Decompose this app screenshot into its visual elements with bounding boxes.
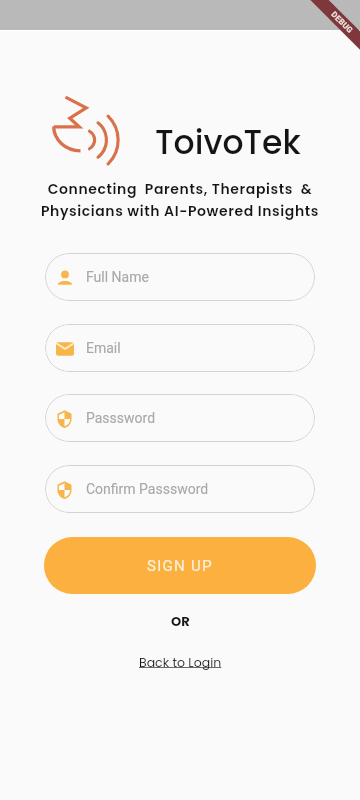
button[interactable]: Confirm Passsword — [45, 465, 315, 513]
staticText: Connecting Parents, Therapists & Physici… — [0, 179, 360, 221]
button[interactable]: Back to Login — [139, 654, 222, 671]
staticText: SIGN UP — [147, 557, 213, 575]
button[interactable]: Email — [45, 324, 315, 372]
button[interactable]: Full Name — [45, 253, 315, 301]
staticText: DEBUG — [329, 10, 355, 35]
button[interactable]: SIGN UP — [44, 537, 316, 594]
button[interactable]: Passsword — [45, 394, 315, 442]
staticText: Back to Login — [139, 654, 222, 671]
staticText: Passsword — [86, 410, 156, 426]
staticText: Full Name — [86, 269, 149, 285]
staticText: Confirm Passsword — [86, 481, 209, 497]
staticText: OR — [171, 612, 190, 630]
staticText: Email — [86, 340, 121, 356]
staticText: ToivoTek — [155, 119, 301, 165]
